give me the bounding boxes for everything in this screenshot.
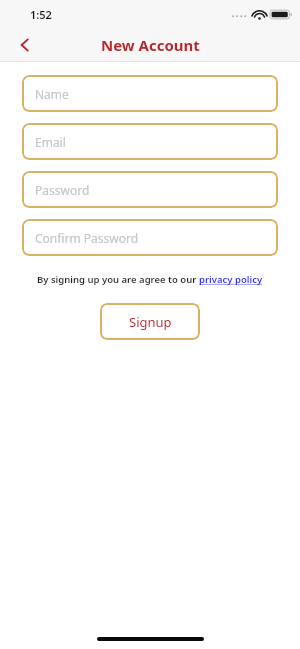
staticText: Email [35,134,66,150]
button[interactable]: Name [22,75,278,112]
button[interactable]: Email [22,123,278,160]
staticText: Signup [129,313,172,331]
staticText: By signing up you are agree to our [37,273,199,286]
staticText: Password [35,182,90,198]
staticText: privacy policy [199,273,263,286]
staticText: New Account [101,35,200,55]
staticText: Name [35,86,69,102]
button[interactable]: privacy policy [199,273,263,286]
staticText: 1:52 [30,7,52,22]
staticText: Confirm Password [35,230,139,246]
button[interactable]: Back [12,32,38,58]
button[interactable]: Password [22,171,278,208]
button[interactable]: Signup [100,303,200,340]
button[interactable]: Confirm Password [22,219,278,256]
